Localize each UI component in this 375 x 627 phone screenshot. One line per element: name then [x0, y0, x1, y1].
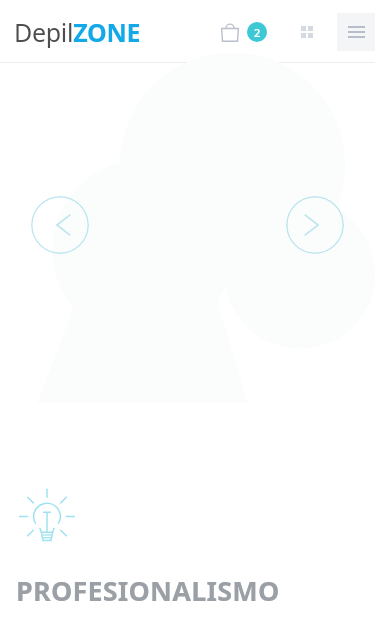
staticText: 2 [254, 25, 261, 40]
button[interactable]: Menu [337, 13, 375, 51]
button[interactable]: Next slide [286, 196, 344, 254]
button[interactable]: Previous slide [31, 196, 89, 254]
staticText: PROFESIONALISMO [16, 572, 280, 609]
button[interactable]: DepilZONE [14, 15, 141, 49]
staticText: DepilZONE [14, 15, 141, 49]
button[interactable]: Grid view [293, 18, 321, 46]
button[interactable]: Cart, 2 items [215, 15, 271, 49]
